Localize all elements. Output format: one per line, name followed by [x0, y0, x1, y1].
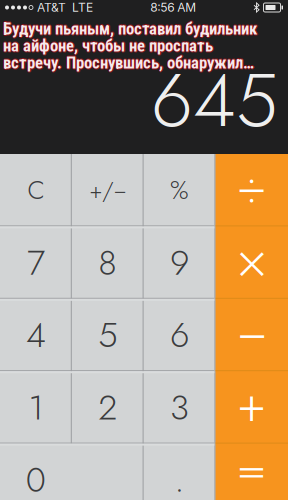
staticText: на айфоне, чтобы не проспать: [3, 35, 213, 54]
staticText: 9: [170, 238, 189, 288]
button[interactable]: 3: [144, 371, 215, 444]
button[interactable]: ÷: [215, 154, 288, 226]
button[interactable]: 6: [144, 299, 215, 371]
button[interactable]: ×: [215, 226, 288, 299]
button[interactable]: +: [215, 371, 288, 444]
staticText: 2: [98, 382, 117, 432]
staticText: .: [174, 455, 184, 500]
staticText: Будучи пьяным, поставил будильник: [3, 19, 257, 38]
staticText: 3: [170, 382, 189, 432]
staticText: Будучи пьяным, поставил будильник: [3, 20, 257, 39]
staticText: +/−: [89, 174, 126, 207]
staticText: Будучи пьяным, поставил будильник: [2, 19, 256, 38]
staticText: 8:56 AM: [150, 0, 196, 15]
staticText: Будучи пьяным, поставил будильник: [3, 18, 257, 37]
button[interactable]: 0: [0, 444, 144, 500]
staticText: ÷: [237, 152, 267, 221]
button[interactable]: C: [0, 154, 72, 226]
staticText: на айфоне, чтобы не проспать: [2, 36, 212, 55]
staticText: на айфоне, чтобы не проспать: [4, 36, 214, 55]
staticText: %: [170, 172, 189, 208]
staticText: Будучи пьяным, поставил будильник: [4, 19, 258, 38]
staticText: встречу. Проснувшись, обнаружил…: [2, 53, 253, 72]
staticText: 645: [151, 46, 278, 154]
staticText: +: [237, 368, 267, 441]
button[interactable]: 5: [72, 299, 144, 371]
button[interactable]: 1: [0, 371, 72, 444]
staticText: =: [237, 434, 267, 500]
button[interactable]: 7: [0, 226, 72, 299]
staticText: 4: [26, 310, 46, 360]
staticText: 8: [98, 238, 117, 288]
button[interactable]: −: [215, 299, 288, 371]
staticText: 5: [98, 310, 117, 360]
staticText: −: [236, 293, 267, 370]
button[interactable]: 9: [144, 226, 215, 299]
staticText: встречу. Проснувшись, обнаружил…: [3, 54, 254, 73]
button[interactable]: .: [144, 444, 215, 500]
staticText: C: [27, 172, 44, 208]
staticText: на айфоне, чтобы не проспать: [3, 36, 213, 55]
staticText: встречу. Проснувшись, обнаружил…: [4, 53, 255, 72]
staticText: LTE: [72, 0, 93, 15]
button[interactable]: +/−: [72, 154, 144, 226]
staticText: 6: [170, 310, 189, 360]
staticText: ×: [236, 221, 267, 298]
staticText: 1: [28, 382, 43, 432]
staticText: 7: [27, 238, 45, 288]
staticText: на айфоне, чтобы не проспать: [3, 37, 213, 56]
button[interactable]: 4: [0, 299, 72, 371]
button[interactable]: %: [144, 154, 215, 226]
button[interactable]: 2: [72, 371, 144, 444]
button[interactable]: 8: [72, 226, 144, 299]
staticText: 0: [26, 455, 46, 500]
staticText: встречу. Проснувшись, обнаружил…: [3, 53, 254, 72]
button[interactable]: =: [215, 444, 288, 500]
staticText: AT&T: [37, 0, 66, 15]
staticText: встречу. Проснувшись, обнаружил…: [3, 52, 254, 71]
